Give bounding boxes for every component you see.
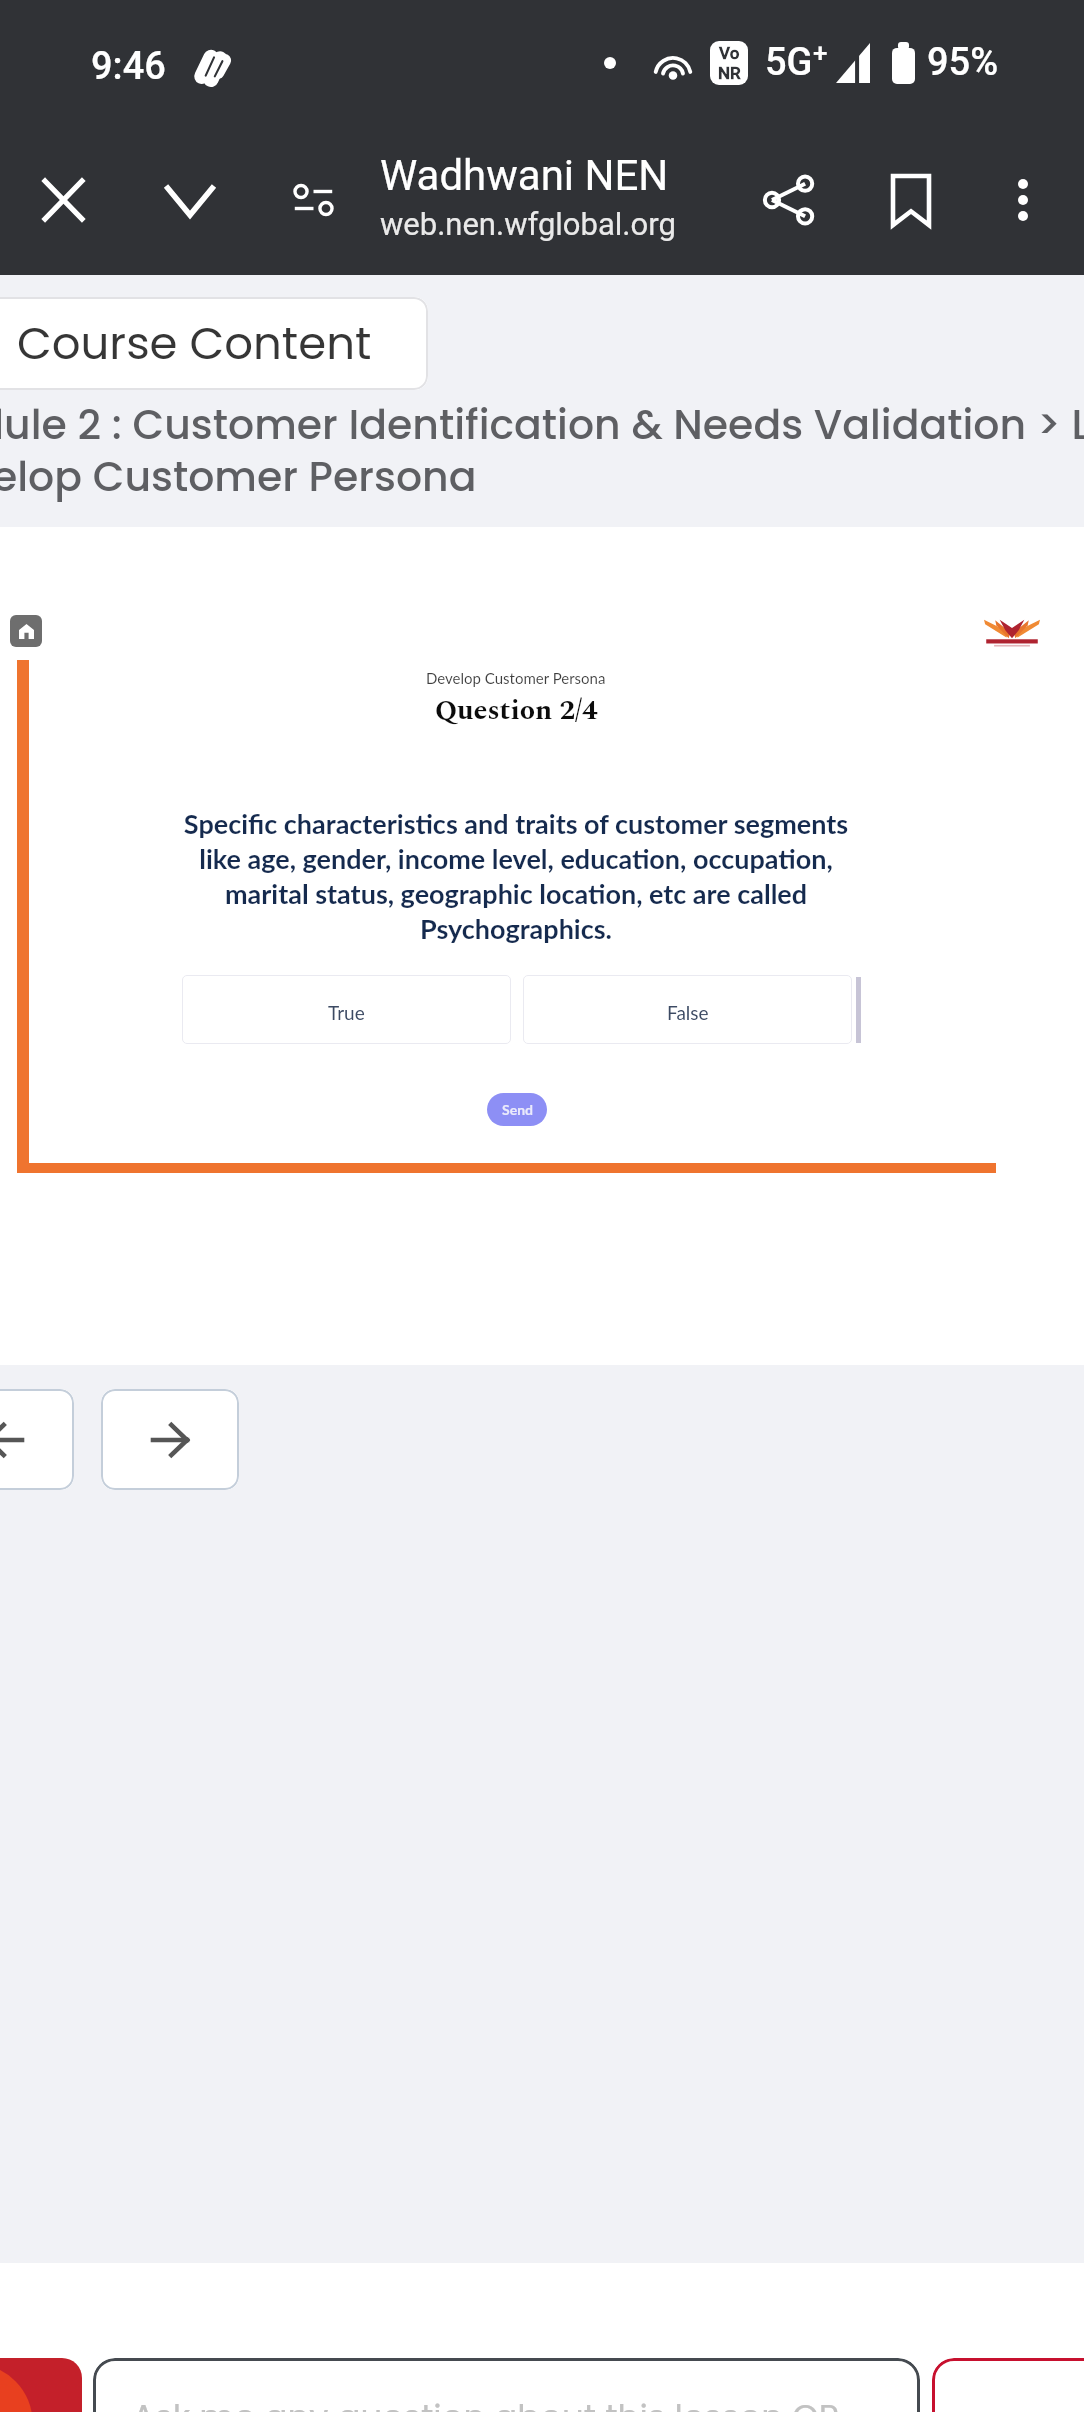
button[interactable]: Close bbox=[2, 125, 125, 275]
staticText: 5G bbox=[765, 40, 813, 85]
button[interactable]: Ask me any question about this lesson OR bbox=[93, 2358, 920, 2412]
staticText: web.nen.wfglobal.org bbox=[380, 206, 676, 242]
staticText: NR bbox=[718, 63, 741, 83]
button[interactable]: Share bbox=[727, 125, 850, 275]
staticText: Course Content bbox=[17, 312, 372, 375]
staticText: + bbox=[813, 38, 828, 68]
staticText: True bbox=[328, 1001, 365, 1024]
staticText: Module 2 : Customer Identification & Nee… bbox=[0, 396, 1084, 505]
button[interactable]: Send bbox=[487, 1093, 547, 1126]
staticText: Question 2/4 bbox=[435, 689, 598, 732]
staticText: 95% bbox=[927, 40, 999, 85]
button[interactable]: Assistant avatar bbox=[0, 2358, 82, 2412]
button[interactable]: Bookmark bbox=[849, 125, 972, 275]
button[interactable]: Home bbox=[10, 615, 42, 647]
staticText: Specific characteristics and traits of c… bbox=[176, 807, 856, 945]
button[interactable]: More options bbox=[961, 125, 1084, 275]
staticText: Wadhwani NEN bbox=[380, 151, 669, 200]
button[interactable]: False bbox=[523, 975, 852, 1044]
button[interactable]: Course Content bbox=[0, 297, 428, 390]
staticText: Ask me any question about this lesson OR bbox=[132, 2393, 840, 2412]
button[interactable]: Previous page bbox=[0, 1389, 74, 1490]
staticText: 9:46 bbox=[91, 44, 166, 89]
button[interactable]: Next page bbox=[101, 1389, 239, 1490]
staticText: Develop Customer Persona bbox=[426, 669, 606, 687]
button[interactable]: True bbox=[182, 975, 511, 1044]
button[interactable]: Page info bbox=[252, 125, 375, 275]
button[interactable]: Voice input bbox=[932, 2358, 1084, 2412]
staticText: False bbox=[667, 1001, 709, 1024]
staticText: Send bbox=[502, 1101, 533, 1118]
button[interactable]: Expand toolbar bbox=[128, 125, 251, 275]
staticText: Vo bbox=[719, 43, 740, 63]
